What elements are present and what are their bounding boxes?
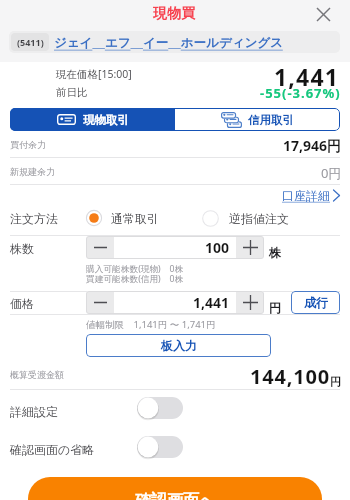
staticText: 144,100 — [250, 363, 330, 390]
staticText: 買付余力 — [10, 139, 46, 150]
staticText: 株数 — [10, 241, 34, 256]
staticText: 逆指値注文 — [229, 211, 289, 226]
button[interactable]: 逆指値注文 — [202, 206, 289, 230]
staticText: 確認画面へ — [135, 491, 216, 500]
button[interactable]: 減らす — [86, 236, 114, 259]
staticText: 概算受渡金額 — [10, 369, 64, 380]
staticText: 現在価格[15:00] — [56, 67, 132, 81]
button[interactable]: 口座詳細 — [258, 187, 340, 203]
button[interactable]: 成行 — [291, 291, 340, 314]
staticText: 100 — [114, 238, 229, 257]
staticText: 信用取引 — [248, 113, 294, 127]
staticText: -55(-3.67%) — [260, 84, 341, 102]
staticText: 前日比 — [56, 86, 88, 99]
staticText: 購入可能株数(現物) 0株 — [86, 263, 184, 275]
button[interactable]: 増やす — [236, 236, 264, 259]
staticText: 現物買 — [153, 5, 195, 23]
staticText: 値幅制限 1,141円 〜 1,741円 — [86, 318, 216, 331]
button[interactable]: 信用取引 — [175, 108, 340, 131]
staticText: 1,441 — [274, 61, 340, 92]
button[interactable]: 確認画面の省略 — [0, 435, 350, 473]
staticText: 通常取引 — [111, 211, 159, 226]
button[interactable]: 詳細設定 — [0, 396, 350, 434]
button[interactable]: 閉じる — [312, 3, 334, 25]
staticText: 円 — [269, 300, 281, 315]
staticText: 価格 — [10, 296, 34, 311]
button[interactable]: 通常取引 — [86, 206, 159, 230]
staticText: 円 — [330, 375, 341, 389]
button[interactable]: (5411) — [9, 31, 340, 53]
staticText: ジェイ エフ イー ホールディングス — [54, 34, 283, 51]
staticText: 17,946円 — [283, 136, 342, 155]
button[interactable]: 現物取引 — [10, 108, 175, 131]
staticText: 板入力 — [161, 338, 197, 353]
staticText: 1,441 — [114, 293, 229, 312]
staticText: 確認画面の省略 — [10, 442, 95, 457]
staticText: 詳細設定 — [10, 404, 58, 419]
staticText: 買建可能株数(信用) 0株 — [86, 273, 184, 285]
staticText: (5411) — [17, 36, 44, 48]
button[interactable]: 板入力 — [86, 334, 271, 357]
staticText: 株 — [269, 245, 281, 260]
staticText: 0円 — [321, 164, 342, 182]
button[interactable]: 減らす — [86, 291, 114, 314]
staticText: 口座詳細 — [282, 188, 330, 203]
staticText: 新規建余力 — [10, 166, 55, 177]
button[interactable]: 確認画面へ — [28, 477, 322, 500]
staticText: 現物取引 — [83, 113, 129, 127]
button[interactable]: 増やす — [236, 291, 264, 314]
staticText: 注文方法 — [10, 211, 58, 226]
staticText: 成行 — [304, 295, 328, 310]
